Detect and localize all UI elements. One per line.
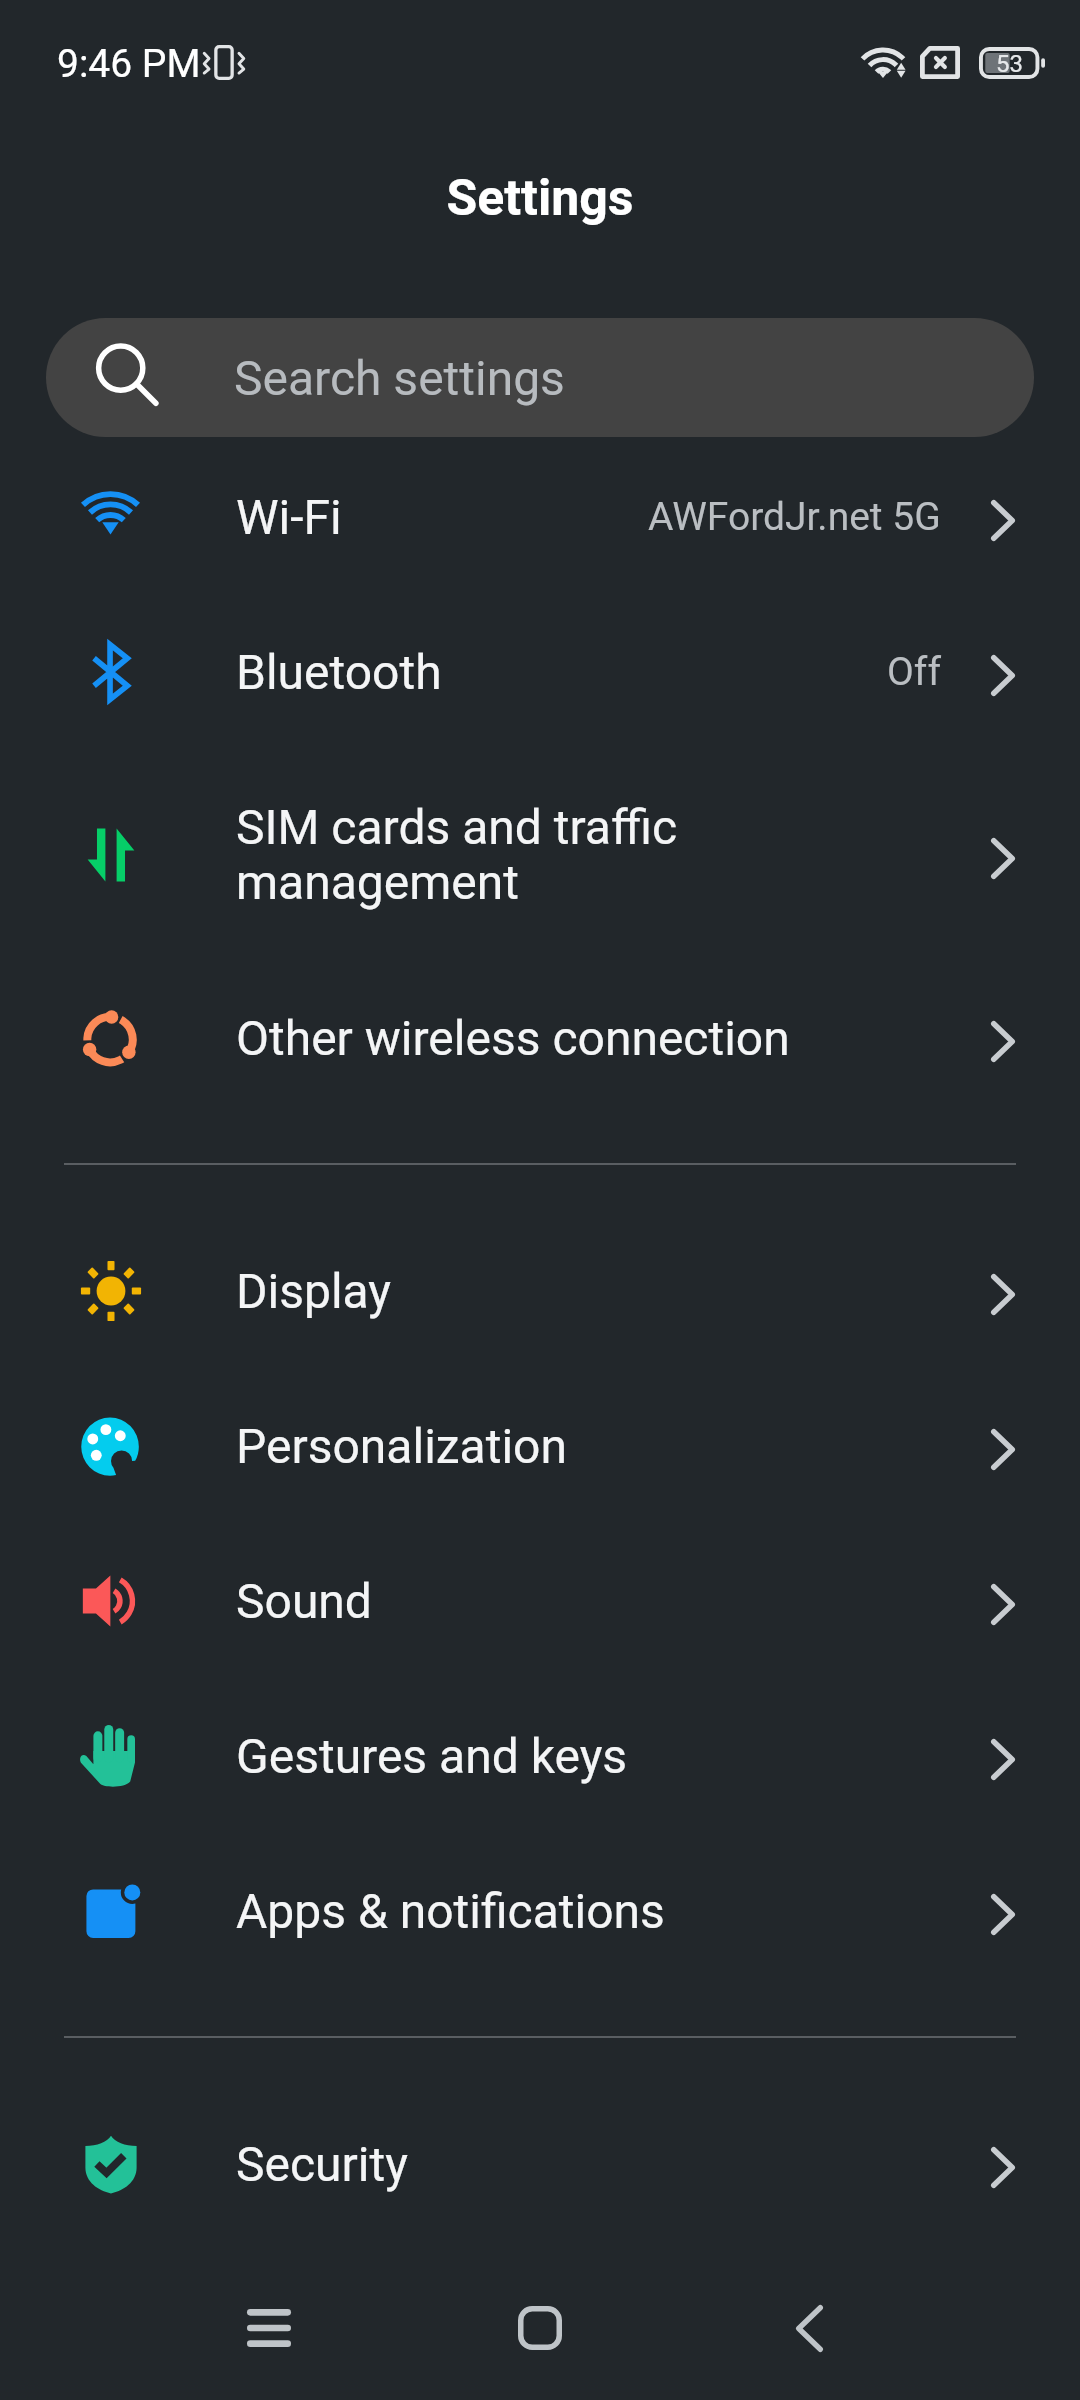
staticText: Security xyxy=(236,2136,971,2192)
button[interactable]: Home xyxy=(450,2256,630,2400)
staticText: Display xyxy=(236,1263,971,1319)
staticText: Bluetooth xyxy=(236,644,867,700)
button[interactable]: Wi-Fi xyxy=(0,439,1080,594)
staticText: Off xyxy=(887,649,941,695)
staticText: Search settings xyxy=(234,350,565,406)
button[interactable]: Personalization xyxy=(0,1368,1080,1523)
staticText: Wi-Fi xyxy=(236,489,628,545)
button[interactable]: Back xyxy=(719,2256,899,2400)
button[interactable]: Bluetooth xyxy=(0,594,1080,749)
button[interactable]: Display xyxy=(0,1213,1080,1368)
button[interactable]: Recents xyxy=(179,2256,359,2400)
button[interactable]: Search settings xyxy=(46,318,1034,437)
staticText: Other wireless connection xyxy=(236,1010,971,1066)
button[interactable]: Security xyxy=(0,2086,1080,2241)
staticText: Personalization xyxy=(236,1418,971,1474)
button[interactable]: Apps & notifications xyxy=(0,1833,1080,1988)
staticText: 9:46 PM xyxy=(57,41,201,87)
staticText: SIM cards and traffic management xyxy=(236,799,971,911)
staticText: Gestures and keys xyxy=(236,1728,971,1784)
staticText: 53 xyxy=(996,50,1023,78)
button[interactable]: Gestures and keys xyxy=(0,1678,1080,1833)
button[interactable]: Other wireless connection xyxy=(0,960,1080,1115)
staticText: AWFordJr.net 5G xyxy=(648,494,941,540)
staticText: Sound xyxy=(236,1573,971,1629)
staticText: Apps & notifications xyxy=(236,1883,971,1939)
button[interactable]: Sound xyxy=(0,1523,1080,1678)
button[interactable]: SIM cards and traffic management xyxy=(0,749,1080,960)
staticText: Settings xyxy=(446,169,634,228)
